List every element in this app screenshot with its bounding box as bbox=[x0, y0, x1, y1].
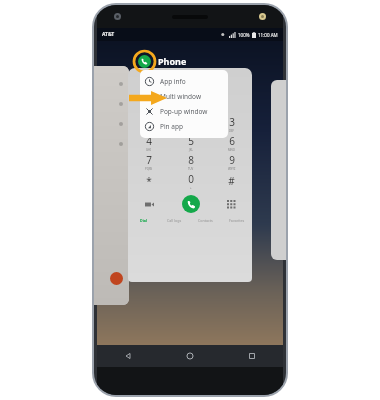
staticText: Contacts bbox=[198, 218, 213, 223]
button[interactable]: Video call bbox=[145, 200, 154, 209]
button[interactable]: Home bbox=[159, 345, 221, 367]
staticText: Call logs bbox=[167, 218, 182, 223]
staticText: Favorites bbox=[229, 218, 245, 223]
button[interactable]: Multi window bbox=[140, 89, 228, 104]
staticText: TUV bbox=[188, 167, 194, 171]
button[interactable]: 7 bbox=[128, 152, 170, 171]
staticText: Phone bbox=[158, 55, 187, 67]
button[interactable]: 5 bbox=[170, 133, 211, 152]
button[interactable]: Dial bbox=[128, 215, 159, 225]
staticText: JKL bbox=[189, 148, 193, 152]
button[interactable]: * bbox=[128, 171, 170, 190]
button[interactable]: Contacts bbox=[190, 215, 221, 225]
button[interactable]: Keypad options bbox=[227, 200, 236, 209]
button[interactable]: Pop-up window bbox=[140, 104, 228, 119]
button[interactable] bbox=[94, 66, 129, 305]
staticText: 7 bbox=[146, 153, 152, 167]
staticText: 1 bbox=[146, 117, 152, 131]
button[interactable]: Favorites bbox=[221, 215, 252, 225]
staticText: App info bbox=[160, 77, 186, 86]
staticText: Dial bbox=[140, 218, 147, 223]
staticText: MNO bbox=[228, 148, 235, 152]
staticText: GHI bbox=[146, 148, 152, 152]
button[interactable]: 3 bbox=[211, 114, 252, 133]
staticText: 4 bbox=[146, 134, 152, 148]
staticText: AT&T bbox=[102, 31, 115, 38]
staticText: 6 bbox=[229, 134, 235, 148]
staticText: PQRS bbox=[145, 167, 153, 171]
staticText: + bbox=[190, 186, 192, 190]
button[interactable]: Recents bbox=[221, 345, 283, 367]
staticText: 0 bbox=[188, 172, 194, 186]
staticText: 100% bbox=[238, 32, 250, 38]
button[interactable]: 6 bbox=[211, 133, 252, 152]
staticText: 11:00 AM bbox=[258, 32, 278, 38]
staticText: * bbox=[146, 174, 152, 188]
button[interactable]: 4 bbox=[128, 133, 170, 152]
staticText: 3 bbox=[229, 115, 235, 129]
button[interactable]: Back bbox=[97, 345, 159, 367]
button[interactable]: Call bbox=[182, 195, 200, 213]
button[interactable]: App info bbox=[140, 74, 228, 89]
button[interactable]: # bbox=[211, 171, 252, 190]
staticText: 8 bbox=[188, 153, 194, 167]
staticText: Multi window bbox=[160, 92, 202, 101]
button[interactable]: 2 bbox=[170, 114, 211, 133]
button[interactable]: Pin app bbox=[140, 119, 228, 134]
button[interactable]: 8 bbox=[170, 152, 211, 171]
staticText: 9 bbox=[229, 153, 235, 167]
button[interactable]: 0 bbox=[170, 171, 211, 190]
staticText: DEF bbox=[229, 129, 235, 133]
button[interactable]: 9 bbox=[211, 152, 252, 171]
button[interactable]: 1 bbox=[128, 68, 252, 282]
staticText: 5 bbox=[188, 134, 194, 148]
staticText: Pin app bbox=[160, 122, 183, 131]
button[interactable]: 1 bbox=[128, 114, 170, 133]
staticText: Pop-up window bbox=[160, 107, 208, 116]
staticText: WXYZ bbox=[228, 167, 236, 171]
button[interactable]: Call logs bbox=[159, 215, 190, 225]
staticText: # bbox=[228, 174, 235, 188]
